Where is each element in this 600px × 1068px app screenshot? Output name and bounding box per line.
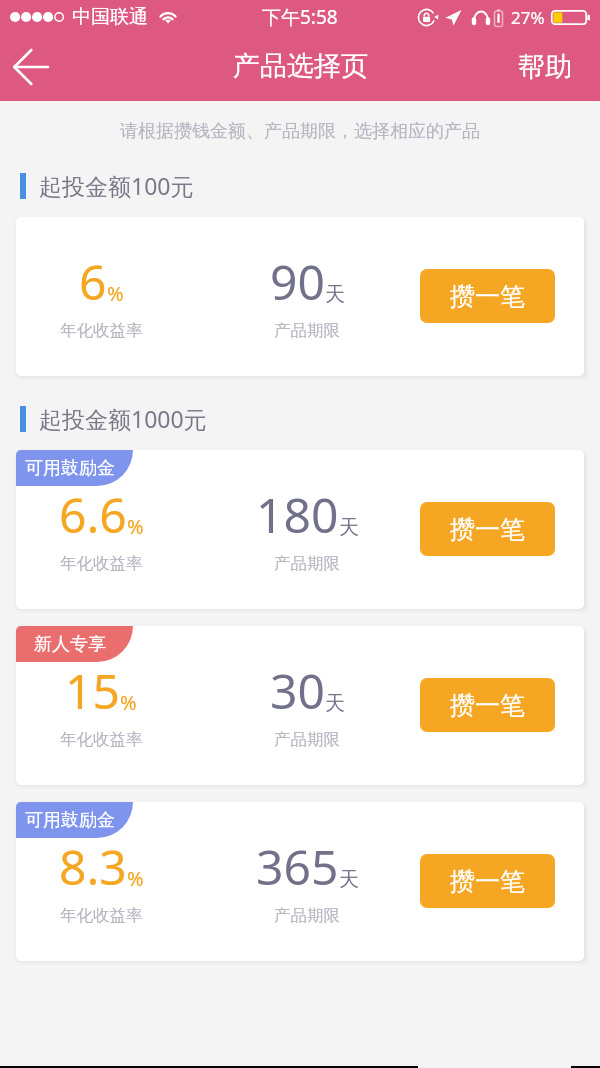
staticText: 攒一笔 (450, 514, 525, 545)
button[interactable]: 新人专享 (16, 626, 584, 785)
staticText: 天 (325, 691, 345, 716)
staticText: 年化收益率 (60, 320, 143, 341)
staticText: % (127, 513, 144, 540)
staticText: 起投金额100元 (39, 170, 194, 201)
staticText: 8.3 (59, 834, 127, 899)
staticText: % (127, 865, 144, 892)
staticText: 产品期限 (274, 729, 340, 750)
staticText: 天 (339, 515, 359, 540)
staticText: 下午5:58 (262, 4, 338, 30)
staticText: 年化收益率 (60, 905, 143, 926)
staticText: 产品期限 (274, 320, 340, 341)
staticText: 27% (511, 6, 545, 29)
button[interactable]: 攒一笔 (420, 678, 555, 732)
staticText: 30 (270, 658, 325, 723)
staticText: 年化收益率 (60, 729, 143, 750)
staticText: 可用鼓励金 (25, 809, 115, 832)
button[interactable]: 攒一笔 (420, 269, 555, 323)
staticText: 攒一笔 (450, 690, 525, 721)
staticText: 产品期限 (274, 905, 340, 926)
staticText: 天 (339, 867, 359, 892)
staticText: 年化收益率 (60, 553, 143, 574)
staticText: 180 (256, 482, 339, 547)
staticText: % (120, 689, 137, 716)
button[interactable]: 攒一笔 (420, 502, 555, 556)
button[interactable]: 6 (16, 217, 584, 376)
staticText: 产品选择页 (233, 49, 368, 83)
staticText: 天 (325, 282, 345, 307)
staticText: 90 (270, 249, 325, 314)
staticText: 请根据攒钱金额、产品期限，选择相应的产品 (120, 120, 480, 143)
button[interactable]: 可用鼓励金 (16, 802, 584, 961)
staticText: 6.6 (59, 482, 127, 547)
button[interactable]: 可用鼓励金 (16, 450, 584, 609)
staticText: 产品期限 (274, 553, 340, 574)
staticText: 6 (79, 249, 107, 314)
staticText: 365 (256, 834, 339, 899)
staticText: 中国联通 (72, 5, 148, 29)
staticText: 新人专享 (34, 633, 106, 656)
staticText: 帮助 (518, 50, 572, 84)
staticText: 攒一笔 (450, 281, 525, 312)
staticText: 可用鼓励金 (25, 457, 115, 480)
staticText: 攒一笔 (450, 866, 525, 897)
staticText: % (107, 280, 124, 307)
button[interactable]: 帮助 (496, 37, 600, 99)
staticText: 起投金额1000元 (39, 403, 207, 434)
button[interactable]: Back (0, 39, 58, 97)
staticText: 15 (65, 658, 120, 723)
button[interactable]: 攒一笔 (420, 854, 555, 908)
